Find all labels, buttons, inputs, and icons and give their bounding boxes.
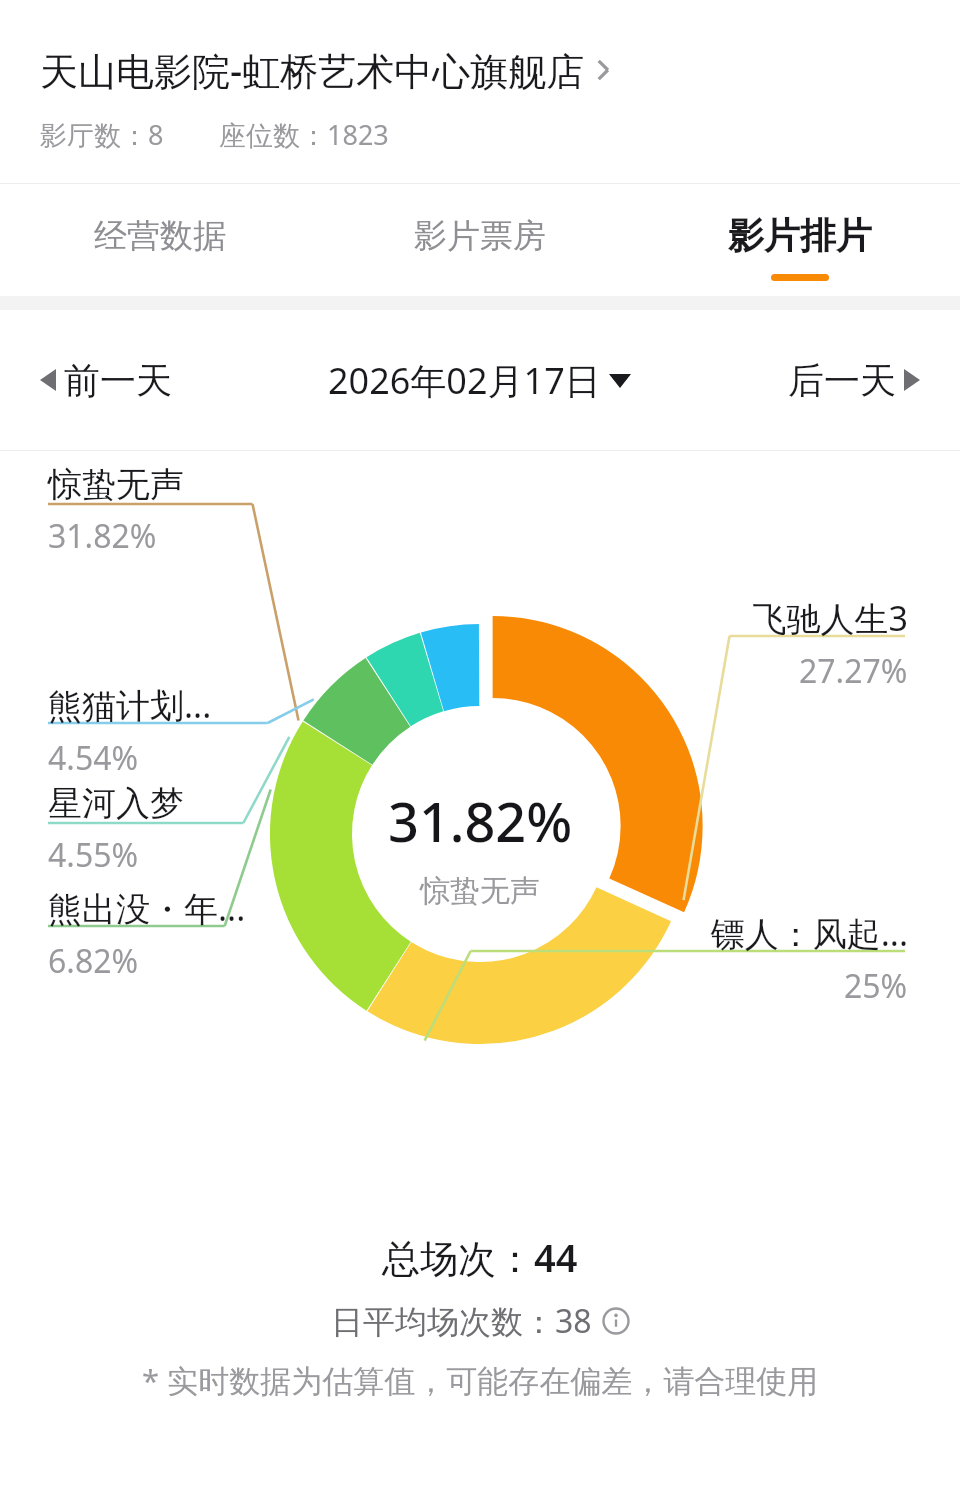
staticText: 4.54%	[48, 736, 139, 780]
staticText: 影片票房	[414, 215, 546, 257]
staticText: 6.82%	[48, 939, 139, 983]
staticText: * 实时数据为估算值，可能存在偏差，请合理使用	[142, 1359, 819, 1401]
staticText: 影片排片	[728, 213, 872, 258]
staticText: 4.55%	[48, 833, 139, 877]
staticText: 31.82%	[48, 514, 157, 558]
staticText: 25%	[844, 964, 908, 1008]
button[interactable]: 后一天	[637, 310, 960, 450]
staticText: 熊出没・年...	[48, 885, 246, 931]
staticText: 镖人：风起...	[710, 910, 908, 956]
staticText: 熊猫计划...	[48, 682, 212, 728]
button[interactable]: 经营数据	[0, 184, 320, 296]
staticText: 27.27%	[799, 649, 908, 693]
staticText: 惊蛰无声	[420, 872, 540, 910]
staticText: 31.82%	[388, 784, 573, 858]
staticText: 影厅数：8	[40, 116, 164, 153]
staticText: 惊蛰无声	[48, 463, 184, 506]
button[interactable]: 影片排片	[640, 184, 960, 296]
button[interactable]: 日平均场次数说明	[331, 1299, 630, 1343]
staticText: 后一天	[788, 358, 896, 403]
staticText: 日平均场次数：38	[331, 1299, 592, 1343]
staticText: 飞驰人生3	[752, 595, 908, 641]
button[interactable]: 前一天	[0, 310, 322, 450]
button[interactable]: 影片票房	[320, 184, 640, 296]
staticText: 总场次：44	[382, 1231, 578, 1283]
button[interactable]: 天山电影院-虹桥艺术中心旗舰店	[40, 44, 637, 96]
staticText: 星河入梦	[48, 782, 184, 825]
staticText: 经营数据	[94, 215, 226, 257]
staticText: 天山电影院-虹桥艺术中心旗舰店	[40, 44, 585, 96]
staticText: 2026年02月17日	[328, 356, 601, 405]
staticText: 前一天	[64, 358, 172, 403]
staticText: 座位数：1823	[219, 116, 389, 153]
button[interactable]: 2026年02月17日	[322, 356, 637, 405]
